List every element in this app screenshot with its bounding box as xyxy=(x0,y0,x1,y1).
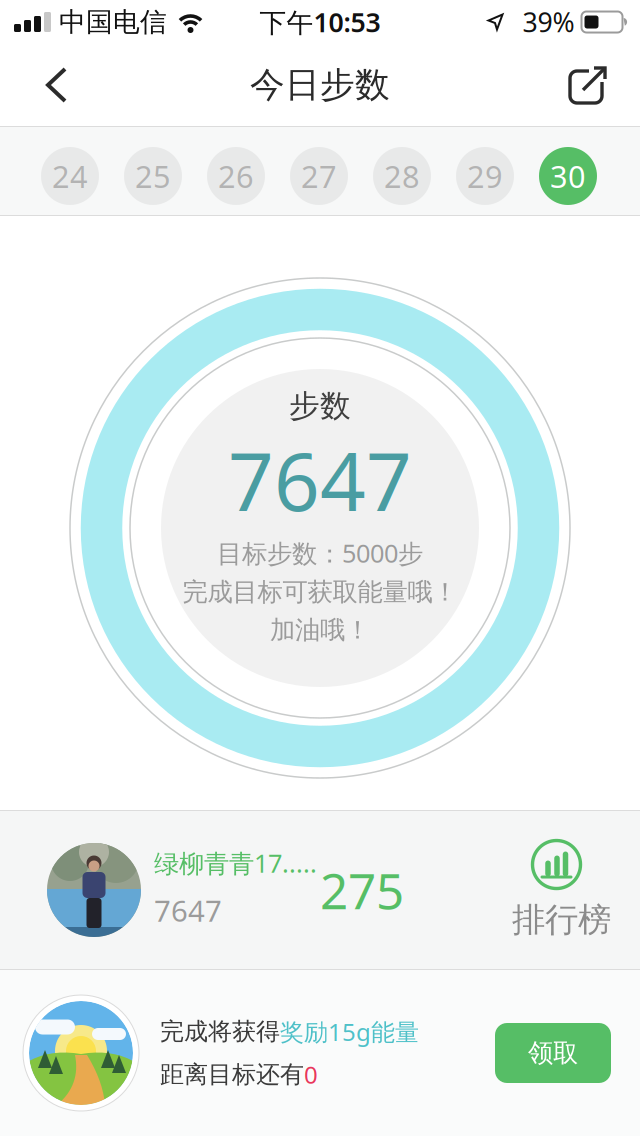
staticText: 26 xyxy=(218,156,254,196)
staticText: 完成目标可获取能量哦！ xyxy=(182,576,457,607)
staticText: 领取 xyxy=(528,1037,578,1068)
staticText: 下午10:53 xyxy=(259,4,380,40)
staticText: 24 xyxy=(52,156,88,196)
button[interactable]: 30 xyxy=(539,147,597,205)
staticText: 275 xyxy=(320,857,404,923)
staticText: 奖励15g能量 xyxy=(280,1016,419,1047)
staticText: 25 xyxy=(135,156,171,196)
staticText: 7647 xyxy=(154,891,222,930)
staticText: 30 xyxy=(550,156,586,196)
button[interactable]: 返回 xyxy=(0,57,86,113)
staticText: 7647 xyxy=(228,427,412,533)
staticText: 完成将获得 xyxy=(160,1017,280,1046)
staticText: 距离目标还有 xyxy=(160,1060,304,1089)
staticText: 0 xyxy=(304,1058,318,1090)
button[interactable]: 26 xyxy=(207,147,265,205)
button[interactable]: 29 xyxy=(456,147,514,205)
staticText: 目标步数：5000步 xyxy=(217,536,423,570)
staticText: 27 xyxy=(301,156,337,196)
button[interactable]: 分享 xyxy=(554,57,640,113)
staticText: 绿柳青青17..... xyxy=(154,846,317,880)
button[interactable]: 25 xyxy=(124,147,182,205)
staticText: 排行榜 xyxy=(512,899,611,940)
staticText: 29 xyxy=(467,156,503,196)
staticText: 中国电信 xyxy=(59,6,167,38)
staticText: 步数 xyxy=(289,387,351,425)
button[interactable]: 28 xyxy=(373,147,431,205)
button[interactable]: 排行榜 xyxy=(512,839,640,940)
staticText: 今日步数 xyxy=(250,64,390,106)
button[interactable]: 24 xyxy=(41,147,99,205)
button[interactable]: 领取 xyxy=(495,1023,611,1083)
button[interactable]: 27 xyxy=(290,147,348,205)
staticText: 39% xyxy=(522,4,574,40)
staticText: 28 xyxy=(384,156,420,196)
staticText: 加油哦！ xyxy=(270,614,370,645)
